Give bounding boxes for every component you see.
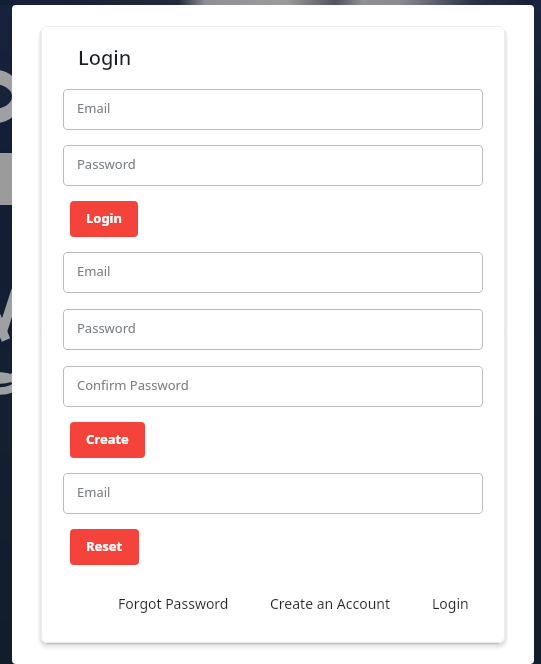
- button[interactable]: Login: [429, 590, 472, 617]
- staticText: Login: [432, 594, 469, 613]
- staticText: Email: [77, 99, 111, 117]
- staticText: Login: [78, 44, 132, 71]
- staticText: Create an Account: [270, 594, 391, 613]
- staticText: Email: [77, 262, 111, 280]
- button[interactable]: Confirm Password: [63, 366, 483, 407]
- staticText: Forgot Password: [118, 594, 229, 613]
- button[interactable]: Reset: [70, 529, 139, 565]
- staticText: Password: [77, 155, 136, 173]
- button[interactable]: Create: [70, 422, 145, 458]
- staticText: Login: [86, 209, 122, 227]
- button[interactable]: Create an Account: [267, 590, 394, 617]
- button[interactable]: Email: [63, 473, 483, 514]
- staticText: Password: [77, 319, 136, 337]
- button[interactable]: Email: [63, 252, 483, 293]
- button[interactable]: Password: [63, 145, 483, 186]
- button[interactable]: Email: [63, 89, 483, 130]
- button[interactable]: Forgot Password: [115, 590, 232, 617]
- button[interactable]: Login: [70, 201, 138, 237]
- staticText: Reset: [86, 537, 123, 555]
- staticText: Email: [77, 483, 111, 501]
- staticText: Create: [86, 430, 129, 448]
- staticText: Confirm Password: [77, 376, 189, 394]
- button[interactable]: Password: [63, 309, 483, 350]
